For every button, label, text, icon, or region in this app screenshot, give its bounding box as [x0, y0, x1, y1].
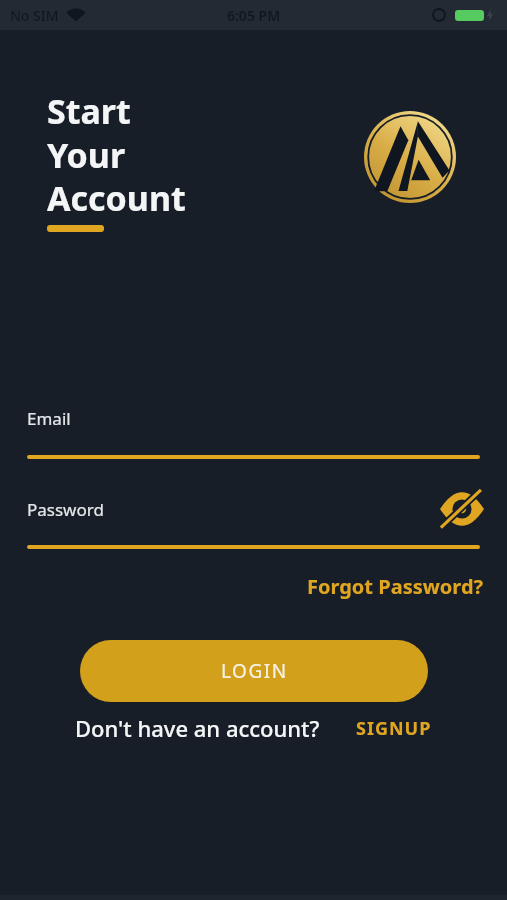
- staticText: 6:05 PM: [227, 6, 281, 25]
- staticText: Don't have an account?: [75, 713, 320, 743]
- staticText: Password: [27, 498, 104, 521]
- button[interactable]: SIGNUP: [356, 716, 432, 741]
- staticText: LOGIN: [221, 658, 288, 684]
- button[interactable]: Password: [27, 493, 480, 549]
- staticText: No SIM: [10, 6, 59, 25]
- staticText: Email: [27, 407, 71, 430]
- button[interactable]: Email: [27, 407, 480, 459]
- button[interactable]: LOGIN: [80, 640, 428, 702]
- button[interactable]: [440, 493, 484, 525]
- button[interactable]: Forgot Password?: [307, 573, 484, 600]
- staticText: Start Your Account: [47, 88, 186, 221]
